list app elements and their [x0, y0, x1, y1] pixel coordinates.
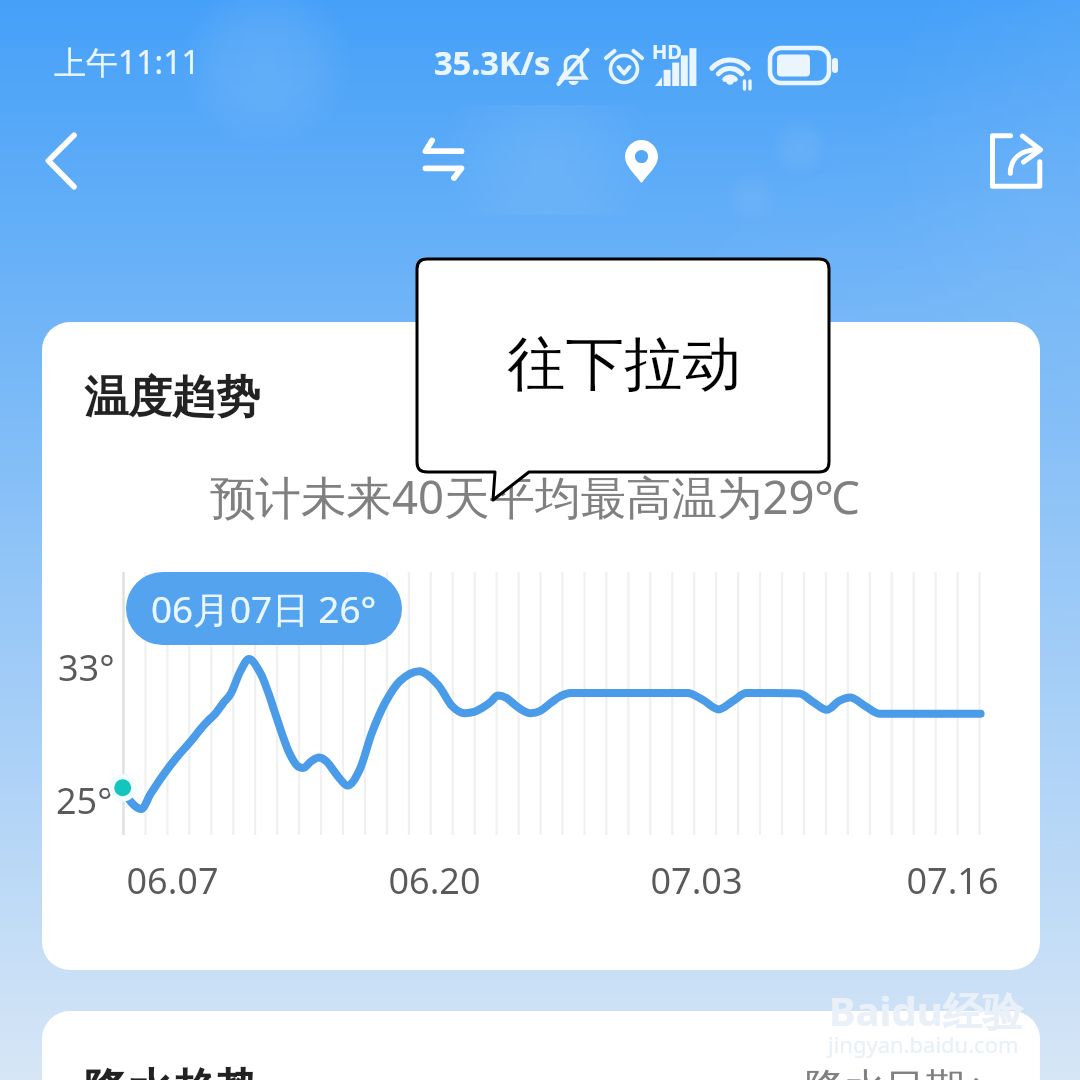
staticText: 06.20 — [388, 856, 481, 905]
staticText: 25° — [56, 776, 113, 825]
staticText: 06.07 — [126, 856, 219, 905]
staticText: Baidu经验 — [829, 983, 1023, 1038]
button[interactable]: 降水日期 — [805, 1063, 999, 1080]
staticText: HD — [652, 38, 682, 65]
staticText: jingyan.baidu.com — [828, 1029, 1019, 1059]
button[interactable]: Switch city — [412, 128, 474, 190]
staticText: 降水日期 — [805, 1063, 965, 1080]
button[interactable]: 降水趋势 — [42, 1011, 1040, 1080]
staticText: 上午11:11 — [54, 40, 200, 84]
button[interactable]: Back — [18, 120, 98, 200]
staticText: 07.03 — [650, 856, 743, 905]
staticText: 降水趋势 — [84, 1063, 260, 1080]
staticText: 33° — [58, 643, 115, 692]
button[interactable]: Location — [625, 140, 665, 180]
staticText: 温度趋势 — [84, 370, 260, 425]
staticText: 预计未来40天平均最高温为29℃ — [210, 465, 860, 527]
button[interactable]: 温度趋势 — [42, 322, 1040, 970]
button[interactable]: Share — [980, 126, 1050, 196]
staticText: 35.3K/s — [434, 40, 551, 84]
button[interactable]: 06月07日 26° — [126, 572, 402, 645]
staticText: 06月07日 26° — [151, 584, 377, 634]
staticText: 07.16 — [906, 856, 999, 905]
staticText: 往下拉动 — [507, 328, 741, 402]
